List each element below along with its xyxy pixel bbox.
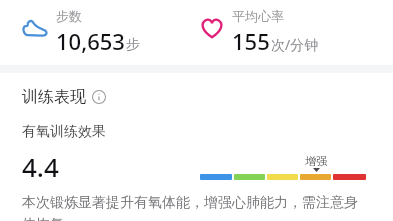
- button[interactable]: 训练表现: [0, 87, 393, 107]
- staticText: 4.4: [22, 149, 59, 184]
- staticText: 10,653: [56, 26, 125, 56]
- staticText: 步数: [56, 8, 82, 24]
- other: Info: [92, 90, 106, 104]
- staticText: 次/分钟: [271, 35, 319, 54]
- staticText: 增强: [305, 154, 327, 168]
- staticText: 有氧训练效果: [22, 123, 106, 141]
- other: Heart rate: [200, 17, 224, 39]
- button[interactable]: Steps: [0, 0, 196, 56]
- staticText: 155: [232, 26, 270, 56]
- button[interactable]: Heart rate: [196, 0, 393, 56]
- staticText: 本次锻炼显著提升有氧体能，增强心肺能力，需注意身体恢复。: [22, 194, 371, 221]
- staticText: 平均心率: [232, 8, 284, 24]
- other: Steps: [22, 18, 48, 38]
- staticText: 训练表现: [22, 87, 86, 107]
- staticText: 步: [126, 36, 140, 54]
